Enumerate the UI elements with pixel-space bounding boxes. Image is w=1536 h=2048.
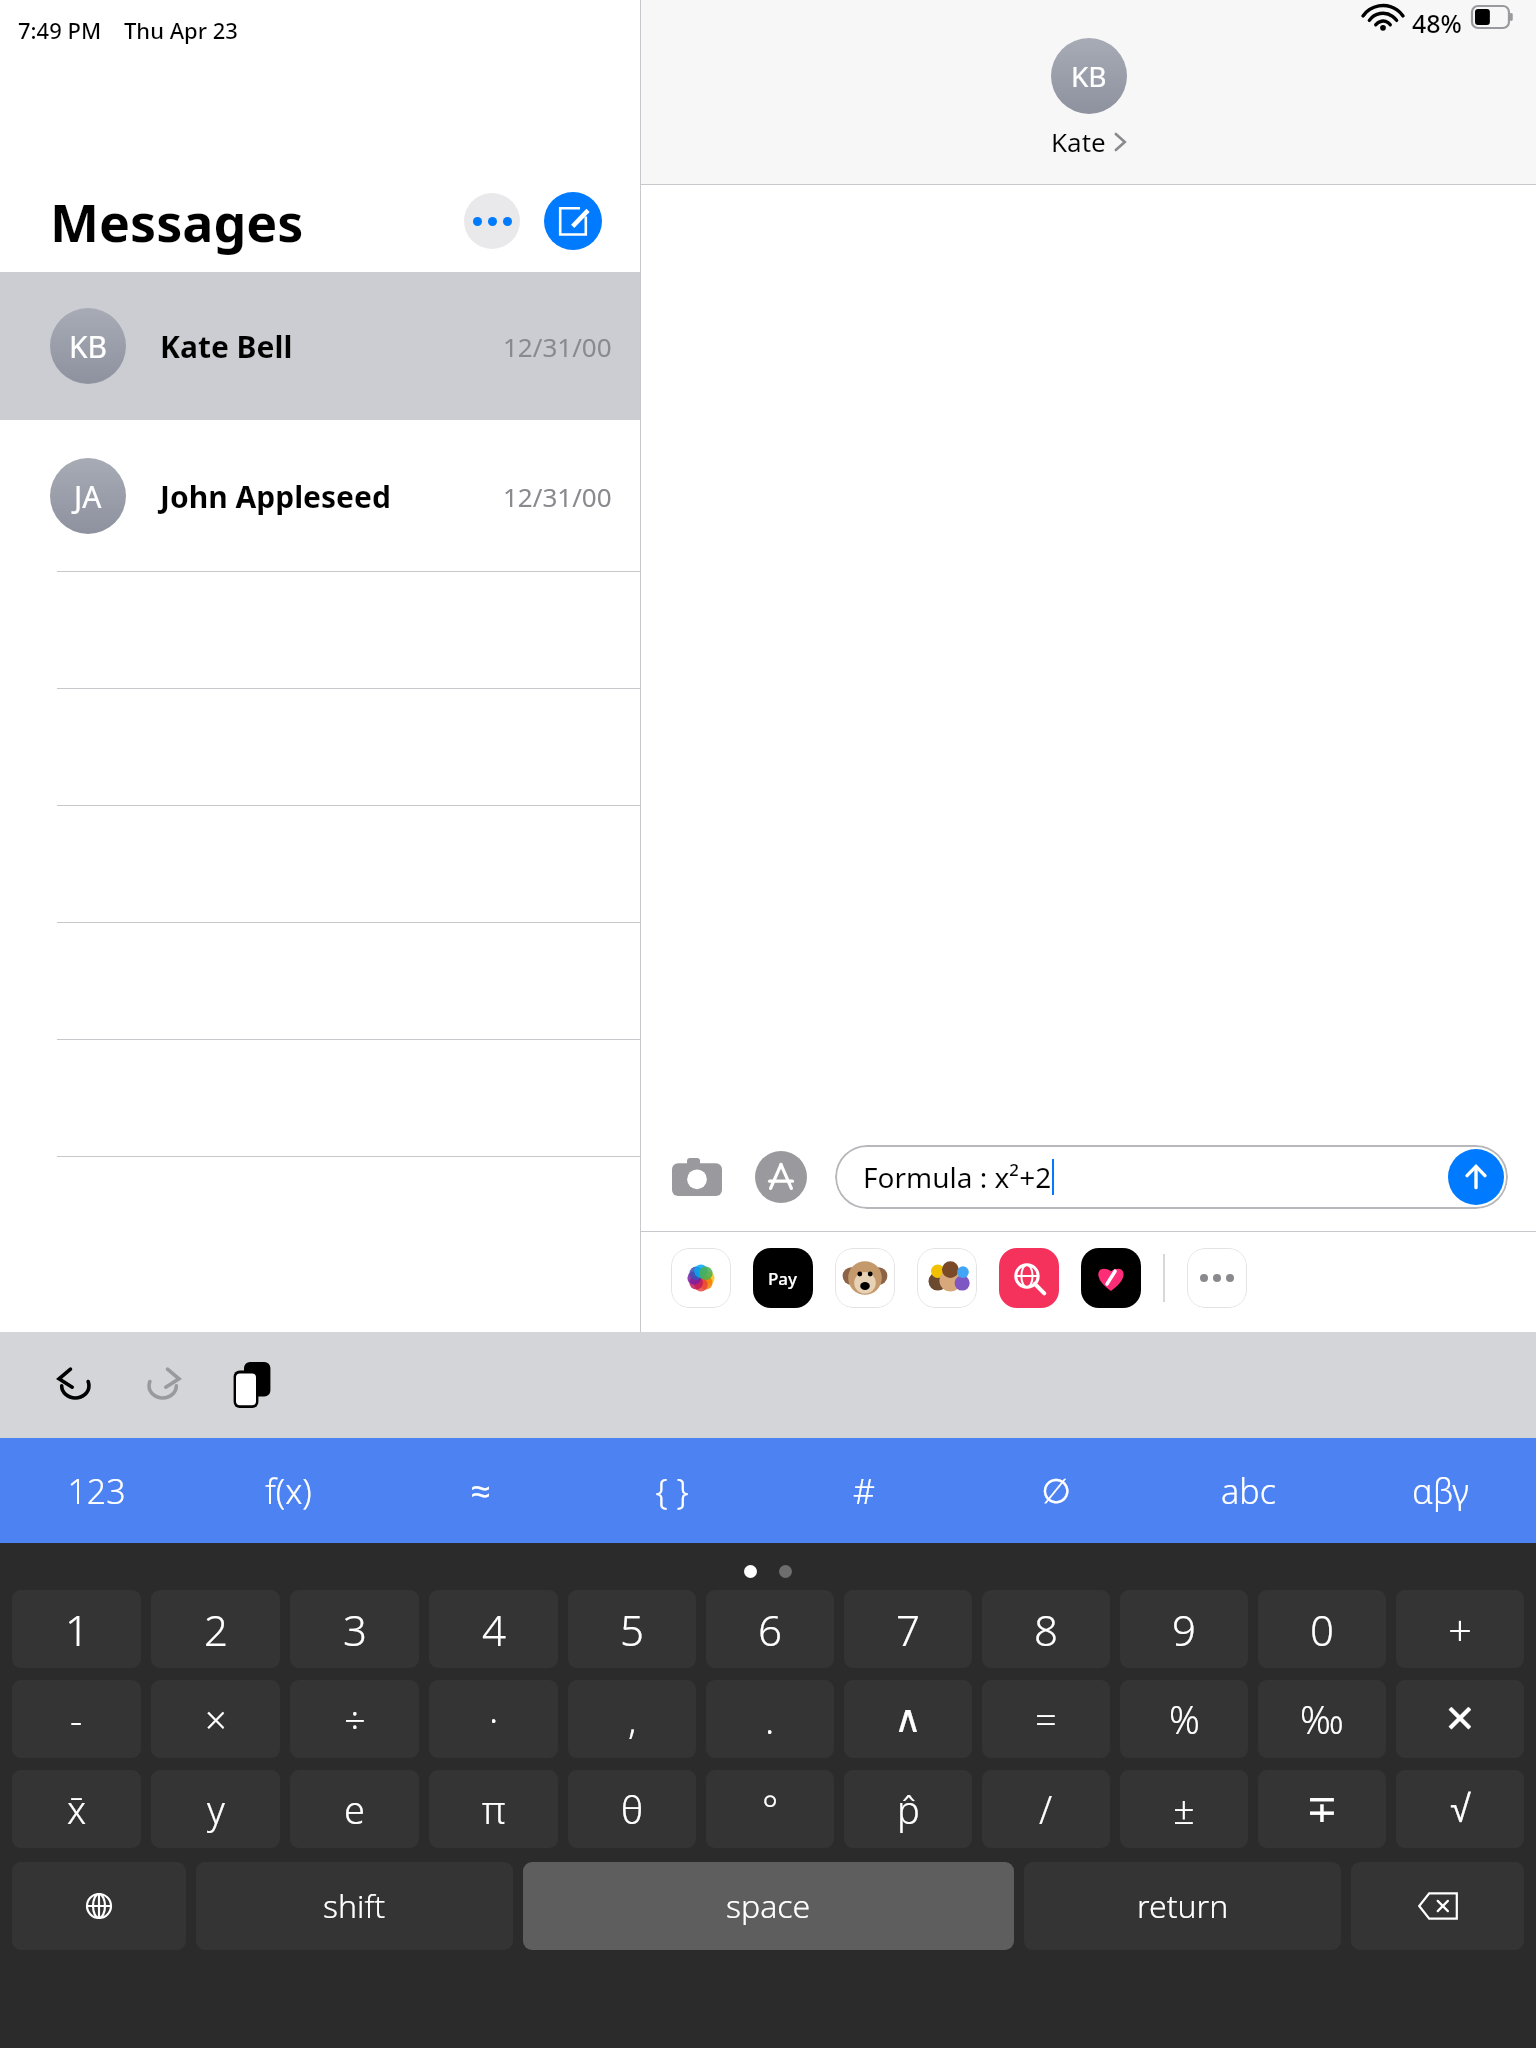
button[interactable]: 7: [844, 1590, 972, 1668]
button[interactable]: Send: [1448, 1149, 1504, 1205]
staticText: y: [207, 1783, 225, 1835]
button[interactable]: JA: [0, 420, 640, 572]
button[interactable]: { }: [576, 1438, 768, 1543]
button[interactable]: 0: [1258, 1590, 1386, 1668]
button[interactable]: ✕: [1396, 1680, 1524, 1758]
button[interactable]: p̂: [844, 1770, 972, 1848]
button[interactable]: KB: [0, 272, 640, 420]
staticText: Kate Bell: [160, 326, 293, 367]
button[interactable]: return: [1024, 1862, 1341, 1950]
button[interactable]: x̄: [12, 1770, 141, 1848]
staticText: abc: [1221, 1468, 1276, 1514]
staticText: +: [1448, 1601, 1472, 1658]
button[interactable]: °: [706, 1770, 834, 1848]
button[interactable]: -: [12, 1680, 141, 1758]
staticText: Pay: [768, 1267, 798, 1290]
staticText: return: [1137, 1884, 1229, 1928]
button[interactable]: f(x): [192, 1438, 384, 1543]
button[interactable]: More apps: [1187, 1248, 1247, 1308]
button[interactable]: Images: [999, 1248, 1059, 1308]
button[interactable]: 2: [151, 1590, 280, 1668]
button[interactable]: ,: [568, 1680, 696, 1758]
button[interactable]: αβγ: [1344, 1438, 1536, 1543]
button[interactable]: KB: [641, 38, 1536, 159]
staticText: #: [853, 1468, 875, 1514]
button[interactable]: ±: [1120, 1770, 1248, 1848]
staticText: ∅: [1041, 1471, 1071, 1511]
staticText: 5: [620, 1601, 644, 1658]
staticText: 48%: [1412, 6, 1462, 40]
button[interactable]: shift: [196, 1862, 513, 1950]
staticText: f(x): [265, 1468, 312, 1514]
button[interactable]: Paste: [222, 1355, 282, 1415]
button[interactable]: 123: [0, 1438, 192, 1543]
staticText: αβγ: [1412, 1468, 1469, 1514]
staticText: 0: [1310, 1601, 1334, 1658]
staticText: 12/31/00: [503, 479, 612, 514]
button[interactable]: ≈: [384, 1438, 576, 1543]
button[interactable]: ∅: [960, 1438, 1152, 1543]
button[interactable]: App Store: [753, 1149, 809, 1205]
staticText: =: [1035, 1693, 1057, 1745]
staticText: KB: [69, 326, 108, 367]
button[interactable]: 9: [1120, 1590, 1248, 1668]
button[interactable]: π: [429, 1770, 558, 1848]
button[interactable]: 3: [290, 1590, 419, 1668]
staticText: ≈: [471, 1472, 490, 1510]
staticText: °: [762, 1783, 779, 1835]
button[interactable]: 6: [706, 1590, 834, 1668]
button[interactable]: %: [1120, 1680, 1248, 1758]
staticText: 3: [343, 1601, 367, 1658]
staticText: -: [70, 1693, 83, 1745]
button[interactable]: 4: [429, 1590, 558, 1668]
button[interactable]: Animoji: [835, 1248, 895, 1308]
staticText: Messages: [50, 186, 304, 257]
button[interactable]: y: [151, 1770, 280, 1848]
button[interactable]: New message: [544, 192, 602, 250]
button[interactable]: Redo: [134, 1355, 194, 1415]
button[interactable]: 1: [12, 1590, 141, 1668]
button[interactable]: ‰: [1258, 1680, 1386, 1758]
button[interactable]: e: [290, 1770, 419, 1848]
button[interactable]: √: [1396, 1770, 1524, 1848]
button[interactable]: Apple Pay: [753, 1248, 813, 1308]
staticText: %: [1169, 1693, 1200, 1745]
button[interactable]: ∓: [1258, 1770, 1386, 1848]
button[interactable]: ∧: [844, 1680, 972, 1758]
button[interactable]: Photos: [671, 1248, 731, 1308]
button[interactable]: +: [1396, 1590, 1524, 1668]
button[interactable]: [12, 1862, 186, 1950]
staticText: Formula : x²+2: [863, 1158, 1052, 1196]
button[interactable]: 8: [982, 1590, 1110, 1668]
staticText: /: [1039, 1783, 1053, 1835]
staticText: 7: [896, 1601, 920, 1658]
staticText: ∓: [1306, 1787, 1338, 1831]
button[interactable]: abc: [1152, 1438, 1344, 1543]
button[interactable]: Undo: [44, 1355, 104, 1415]
button[interactable]: ·: [429, 1680, 558, 1758]
staticText: space: [726, 1884, 811, 1928]
button[interactable]: Memoji: [917, 1248, 977, 1308]
button[interactable]: ×: [151, 1680, 280, 1758]
staticText: 8: [1034, 1601, 1058, 1658]
button[interactable]: .: [706, 1680, 834, 1758]
button[interactable]: Camera: [669, 1149, 725, 1205]
staticText: ·: [489, 1693, 499, 1745]
button[interactable]: ÷: [290, 1680, 419, 1758]
button[interactable]: Formula : x²+2: [835, 1145, 1508, 1209]
button[interactable]: Fitness: [1081, 1248, 1141, 1308]
button[interactable]: space: [523, 1862, 1014, 1950]
button[interactable]: θ: [568, 1770, 696, 1848]
button[interactable]: =: [982, 1680, 1110, 1758]
button[interactable]: #: [768, 1438, 960, 1543]
staticText: 7:49 PM: [18, 15, 102, 45]
button[interactable]: More options: [464, 193, 520, 249]
button[interactable]: 5: [568, 1590, 696, 1668]
staticText: JA: [74, 476, 102, 517]
staticText: John Appleseed: [160, 476, 391, 517]
staticText: KB: [1071, 57, 1107, 95]
staticText: Thu Apr 23: [124, 15, 238, 45]
staticText: ✕: [1444, 1697, 1476, 1741]
button[interactable]: [1351, 1862, 1524, 1950]
button[interactable]: /: [982, 1770, 1110, 1848]
